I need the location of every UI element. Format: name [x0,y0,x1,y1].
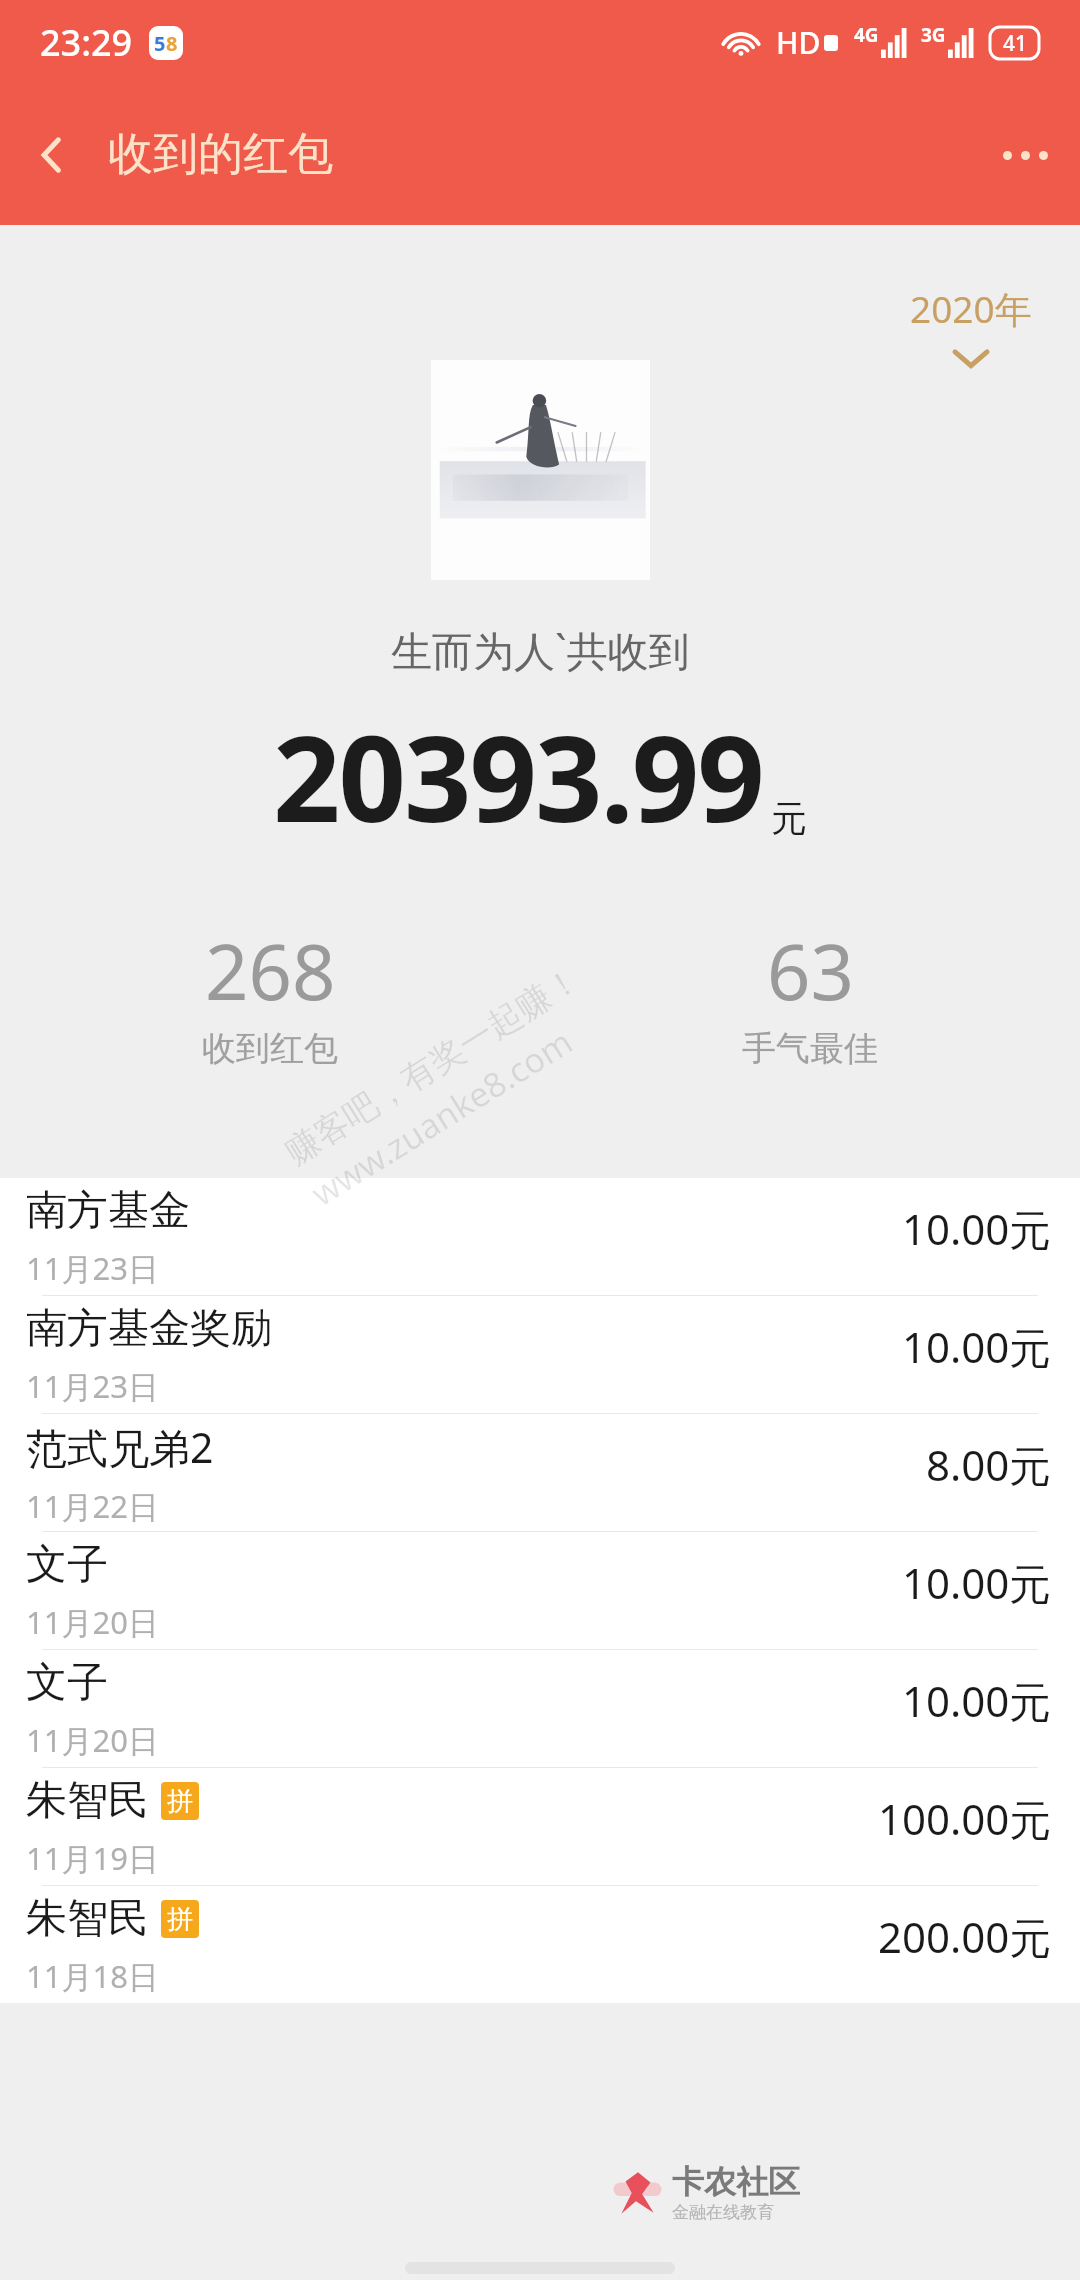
staticText: 8 [166,30,178,57]
staticText: 文子 [26,1539,108,1591]
staticText: www.zuanke8.com [302,1018,581,1216]
button[interactable]: 范式兄弟2 [0,1414,1080,1531]
button[interactable]: 63 [540,919,1080,1070]
staticText: 10.00元 [902,1318,1052,1375]
staticText: 赚客吧，有奖一起赚！ [277,957,588,1174]
staticText: 元 [771,796,807,841]
button[interactable]: 文子 [0,1532,1080,1649]
button[interactable]: 南方基金奖励 [0,1296,1080,1413]
staticText: 268 [205,919,336,1023]
staticText: 5 [154,30,166,57]
staticText: 10.00元 [902,1200,1052,1257]
staticText: 11月20日 [26,1719,159,1761]
staticText: 朱智民 [26,1893,149,1945]
button[interactable]: 朱智民 [0,1768,1080,1885]
staticText: 11月18日 [26,1955,159,1997]
button[interactable]: 文子 [0,1650,1080,1767]
button[interactable]: 2020年 [910,225,1032,370]
staticText: 63 [767,919,854,1023]
button[interactable]: Profile avatar [431,360,650,580]
staticText: 11月20日 [26,1601,159,1643]
staticText: 11月22日 [26,1485,159,1527]
button[interactable]: Back [4,107,100,203]
button[interactable]: 268 [0,919,540,1070]
staticText: 10.00元 [902,1554,1052,1611]
staticText: 100.00元 [878,1790,1052,1847]
staticText: 11月23日 [26,1365,159,1407]
staticText: 4G [854,22,879,48]
staticText: 11月19日 [26,1837,159,1879]
staticText: 金融在线教育 [672,2202,774,2223]
staticText: 200.00元 [878,1908,1052,1965]
staticText: 收到的红包 [108,126,333,183]
staticText: 生而为人`共收到 [391,622,690,678]
staticText: 41 [1003,29,1028,58]
staticText: 23:29 [40,18,133,67]
staticText: HD [776,22,821,63]
staticText: 10.00元 [902,1672,1052,1729]
staticText: 朱智民 [26,1775,149,1827]
button[interactable]: 南方基金 [0,1178,1080,1295]
staticText: 南方基金奖励 [26,1303,272,1355]
button[interactable]: More options [970,100,1080,210]
staticText: 文子 [26,1657,108,1709]
staticText: 2020年 [910,283,1032,334]
button[interactable]: 朱智民 [0,1886,1080,2003]
staticText: 11月23日 [26,1247,159,1289]
staticText: 手气最佳 [742,1027,878,1070]
staticText: 南方基金 [26,1185,190,1237]
staticText: 拼 [167,1785,193,1818]
staticText: 3G [921,22,946,48]
staticText: 卡农社区 [672,2162,800,2202]
staticText: 范式兄弟2 [26,1419,214,1475]
staticText: 20393.99 [273,696,763,857]
staticText: 收到红包 [202,1027,338,1070]
staticText: 拼 [167,1903,193,1936]
staticText: 8.00元 [926,1436,1052,1493]
